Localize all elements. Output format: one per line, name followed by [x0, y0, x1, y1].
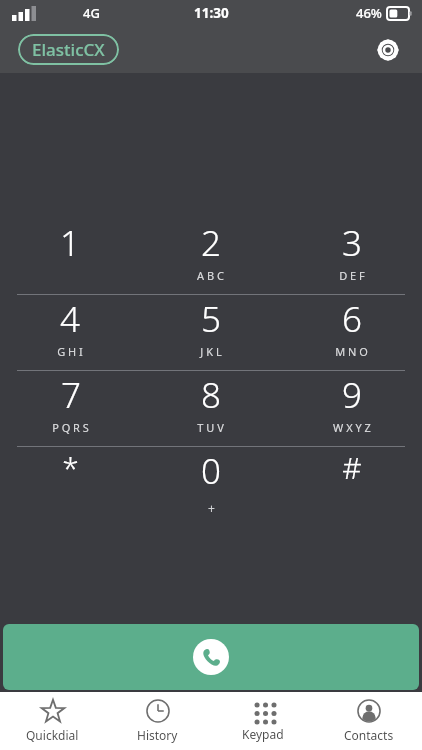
staticText: # [342, 447, 362, 488]
button[interactable]: 8 [140, 371, 281, 446]
staticText: J K L [200, 344, 222, 359]
button[interactable]: Keypad [210, 692, 316, 750]
staticText: 5 [201, 295, 221, 343]
staticText: Keypad [242, 726, 284, 742]
staticText: Contacts [344, 727, 394, 743]
button[interactable]: Settings [368, 30, 408, 70]
button[interactable]: * [0, 447, 140, 522]
staticText: Quickdial [26, 727, 79, 743]
staticText: * [62, 447, 79, 488]
staticText: ElasticCX [32, 38, 105, 61]
staticText: 11:30 [194, 4, 229, 22]
button[interactable]: # [281, 447, 422, 522]
button[interactable]: 5 [140, 295, 281, 370]
button[interactable]: Call [3, 624, 419, 690]
staticText: G H I [57, 344, 83, 359]
staticText: D E F [339, 268, 365, 283]
staticText: 6 [342, 295, 362, 343]
button[interactable]: 6 [281, 295, 422, 370]
staticText: T U V [197, 420, 224, 435]
button[interactable]: Contacts [316, 692, 422, 750]
staticText: M N O [335, 344, 368, 359]
button[interactable]: 3 [281, 219, 422, 294]
staticText: History [137, 727, 178, 743]
button[interactable]: 7 [0, 371, 140, 446]
staticText: A B C [197, 268, 224, 283]
staticText: 7 [61, 371, 81, 419]
staticText: 4G [83, 4, 100, 22]
staticText: 0 [201, 447, 221, 495]
button[interactable]: Quickdial [0, 692, 105, 750]
staticText: W X Y Z [333, 420, 371, 435]
staticText: P Q R S [52, 420, 89, 435]
button[interactable]: 0 [140, 447, 281, 522]
button[interactable]: 4 [0, 295, 140, 370]
button[interactable]: History [105, 692, 210, 750]
staticText: 4 [60, 295, 80, 343]
button[interactable]: ElasticCX [18, 34, 119, 65]
staticText: + [208, 500, 215, 516]
button[interactable]: 2 [140, 219, 281, 294]
button[interactable]: 1 [0, 219, 140, 294]
staticText: 46% [356, 4, 382, 22]
staticText: 1 [60, 219, 80, 267]
staticText: 3 [342, 219, 362, 267]
staticText: 8 [201, 371, 221, 419]
button[interactable]: 9 [281, 371, 422, 446]
staticText: 2 [201, 219, 221, 267]
staticText: 9 [342, 371, 362, 419]
